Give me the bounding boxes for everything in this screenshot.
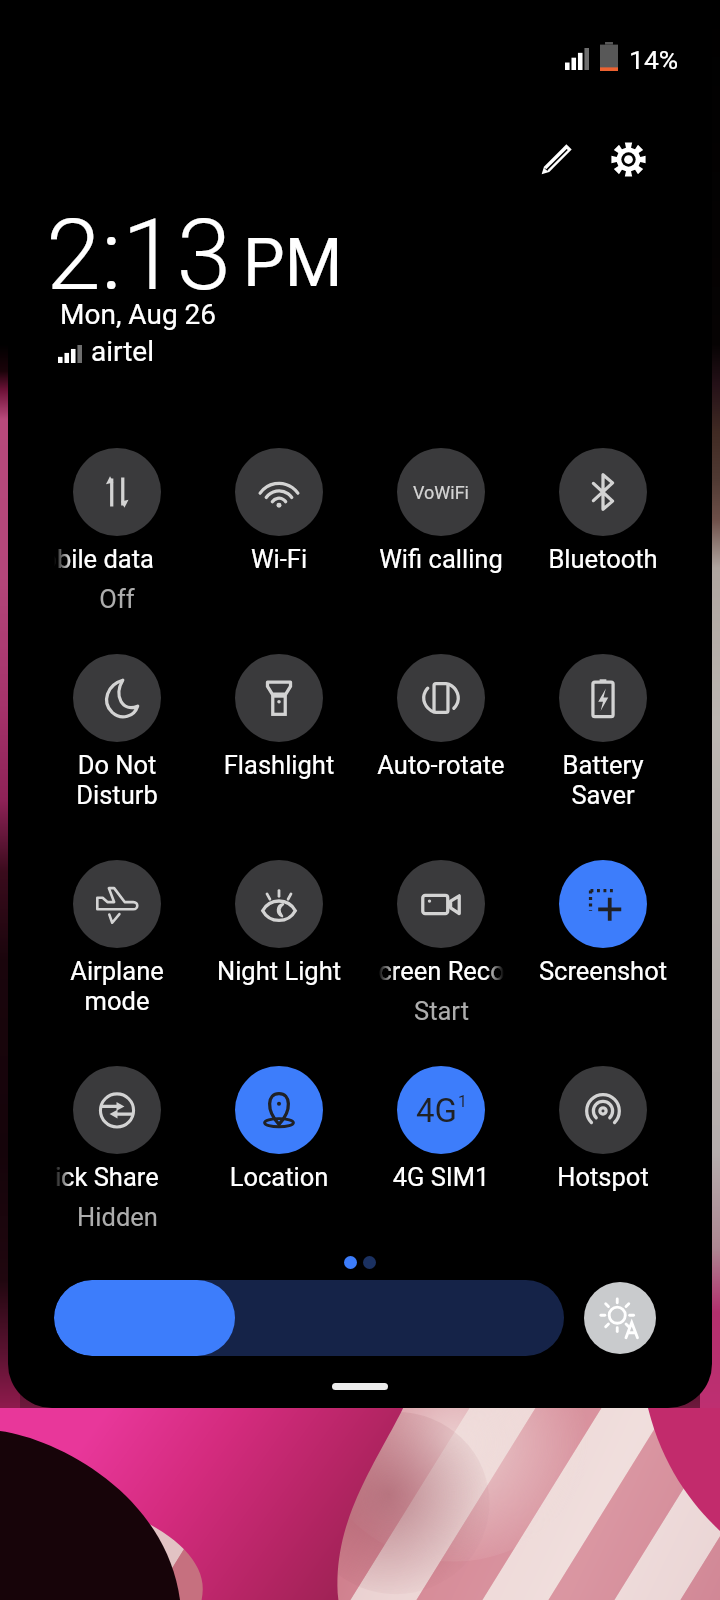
button[interactable]: Flashlight — [198, 654, 360, 780]
staticText: Bluetooth — [534, 544, 672, 574]
button[interactable]: Auto brightness — [584, 1282, 656, 1354]
staticText: Night Light — [210, 956, 348, 986]
button[interactable]: Do Not Disturb — [36, 654, 198, 810]
staticText: 4G — [416, 1091, 458, 1130]
staticText: Flashlight — [210, 750, 348, 780]
button[interactable]: Mobile data — [36, 448, 198, 614]
button[interactable]: Battery Saver — [522, 654, 684, 810]
button[interactable]: Hotspot — [522, 1066, 684, 1192]
staticText: PM — [243, 225, 343, 302]
button[interactable]: Screenshot — [522, 860, 684, 986]
button[interactable]: 4G — [360, 1066, 522, 1192]
button[interactable]: Bluetooth — [522, 448, 684, 574]
staticText: Wifi calling — [372, 544, 510, 574]
staticText: Do Not Disturb — [48, 750, 186, 810]
staticText: 1 — [458, 1092, 467, 1111]
button[interactable]: Airplane mode — [36, 860, 198, 1016]
button[interactable]: Wi-Fi — [198, 448, 360, 574]
staticText: Quick Share — [54, 1162, 159, 1192]
button[interactable]: Quick Share — [36, 1066, 198, 1232]
staticText: Wi-Fi — [210, 544, 348, 574]
staticText: Screen Recorder — [378, 956, 504, 986]
button[interactable]: Screen Recorder — [360, 860, 522, 1026]
staticText: Hidden — [77, 1202, 158, 1232]
staticText: 14% — [629, 44, 679, 75]
staticText: Mon, Aug 26 — [60, 298, 217, 331]
staticText: Off — [99, 584, 135, 614]
button[interactable]: Settings — [600, 131, 656, 187]
staticText: Airplane mode — [48, 956, 186, 1016]
button[interactable]: Brightness — [54, 1280, 564, 1356]
staticText: 4G SIM1 — [372, 1162, 510, 1192]
staticText: Screenshot — [534, 956, 672, 986]
staticText: Hotspot — [534, 1162, 672, 1192]
staticText: 2:13 — [46, 197, 232, 313]
staticText: Mobile data — [54, 544, 154, 574]
staticText: VoWiFi — [413, 482, 469, 503]
staticText: Auto-rotate — [372, 750, 510, 780]
button[interactable]: Location — [198, 1066, 360, 1192]
staticText: airtel — [91, 335, 155, 368]
staticText: Battery Saver — [534, 750, 672, 810]
staticText: Start — [414, 996, 469, 1026]
button[interactable]: Night Light — [198, 860, 360, 986]
button[interactable]: Auto-rotate — [360, 654, 522, 780]
button[interactable]: Edit quick settings — [528, 131, 584, 187]
button[interactable]: VoWiFi — [360, 448, 522, 574]
staticText: Location — [210, 1162, 348, 1192]
